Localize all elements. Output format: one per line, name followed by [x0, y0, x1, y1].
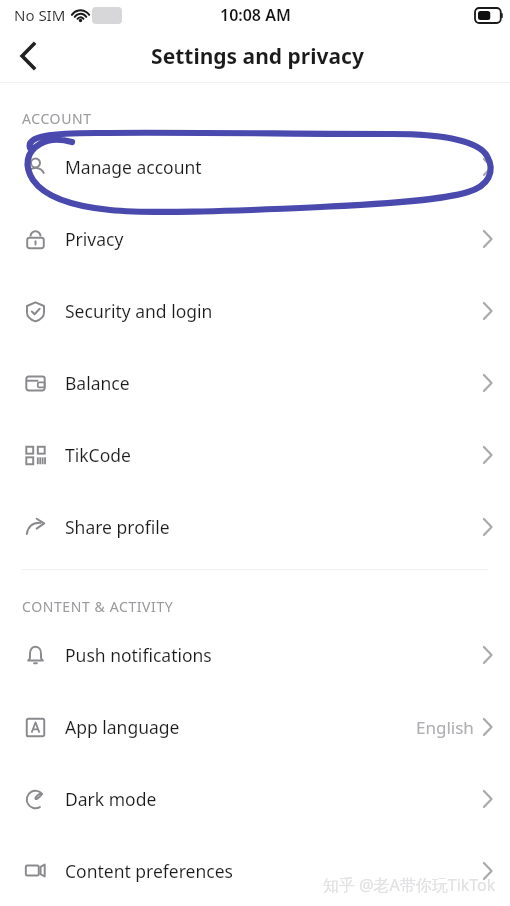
staticText: Balance — [65, 371, 483, 395]
staticText: Privacy — [65, 227, 483, 251]
button[interactable]: Security and login — [0, 275, 510, 347]
staticText: TikCode — [65, 443, 483, 467]
staticText: Dark mode — [65, 787, 483, 811]
staticText: CONTENT & ACTIVITY — [22, 597, 174, 616]
button[interactable]: Content preferences — [0, 835, 510, 906]
staticText: Share profile — [65, 515, 483, 539]
button[interactable]: Manage account — [0, 131, 510, 203]
button[interactable]: Dark mode — [0, 763, 510, 835]
staticText: English — [416, 716, 474, 739]
staticText: Settings and privacy — [151, 42, 364, 71]
button[interactable]: TikCode — [0, 419, 510, 491]
staticText: Manage account — [65, 155, 483, 179]
button[interactable]: Push notifications — [0, 619, 510, 691]
staticText: 知乎 @老A带你玩TikTok — [323, 874, 496, 896]
staticText: No SIM — [14, 5, 66, 25]
staticText: Content preferences — [65, 859, 483, 883]
button[interactable]: Share profile — [0, 491, 510, 563]
button[interactable]: Privacy — [0, 203, 510, 275]
staticText: 10:08 AM — [220, 4, 291, 26]
button[interactable]: Back — [0, 30, 56, 82]
staticText: ACCOUNT — [22, 109, 92, 128]
staticText: Security and login — [65, 299, 483, 323]
staticText: Push notifications — [65, 643, 483, 667]
staticText: App language — [65, 715, 416, 739]
button[interactable]: App language — [0, 691, 510, 763]
button[interactable]: Balance — [0, 347, 510, 419]
